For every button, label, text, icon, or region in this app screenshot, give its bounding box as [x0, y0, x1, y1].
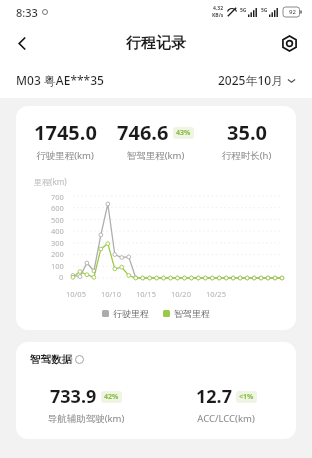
staticText: 智驾里程(km) [110, 149, 201, 162]
staticText: 700 [51, 192, 64, 202]
staticText: 600 [51, 203, 64, 213]
staticText: 42% [104, 392, 119, 402]
other: Info [75, 355, 84, 364]
staticText: 智驾数据 [30, 353, 72, 366]
staticText: 10/15 [136, 289, 156, 299]
button[interactable]: 行驶里程 [102, 308, 149, 319]
staticText: 746.6 [117, 119, 169, 146]
staticText: 行程时长(h) [201, 149, 292, 162]
staticText: ACC/LCC(km) [156, 412, 296, 425]
staticText: 35.0 [227, 119, 267, 146]
button[interactable]: 智驾里程 [163, 308, 210, 319]
staticText: 10/05 [66, 289, 86, 299]
staticText: KB/s [212, 12, 224, 19]
button[interactable]: M03 粤AE***35 [16, 72, 104, 88]
staticText: 100 [51, 261, 64, 271]
staticText: 4.32 [213, 5, 223, 12]
staticText: 43% [176, 128, 191, 138]
staticText: 8:33 [16, 5, 38, 20]
staticText: 92 [289, 8, 296, 16]
staticText: 10/25 [206, 289, 226, 299]
staticText: 里程(km) [34, 176, 67, 187]
staticText: 300 [51, 238, 64, 248]
staticText: 行程记录 [126, 34, 186, 53]
button[interactable]: 智驾数据 [30, 353, 84, 366]
staticText: 行驶里程(km) [20, 149, 110, 162]
button[interactable]: 2025年10月 [218, 72, 296, 88]
staticText: 12.7 [196, 384, 232, 409]
button[interactable]: 733.9 [16, 384, 156, 425]
staticText: 智驾里程 [174, 308, 210, 319]
staticText: 1745.0 [34, 119, 97, 146]
button[interactable]: 35.0 [201, 119, 292, 162]
button[interactable]: Settings [271, 25, 307, 61]
staticText: 200 [51, 249, 64, 259]
staticText: 10/20 [171, 289, 191, 299]
staticText: 5G [261, 7, 268, 14]
button[interactable]: Back [4, 25, 40, 61]
staticText: 导航辅助驾驶(km) [16, 412, 156, 425]
staticText: 400 [51, 226, 64, 236]
button[interactable]: 12.7 [156, 384, 296, 425]
staticText: <1% [239, 392, 254, 402]
staticText: 10/10 [101, 289, 121, 299]
staticText: 行驶里程 [113, 308, 149, 319]
staticText: 500 [51, 215, 64, 225]
staticText: 2025年10月 [218, 72, 284, 88]
button[interactable]: 746.6 [110, 119, 201, 162]
button[interactable]: 1745.0 [20, 119, 110, 162]
staticText: 733.9 [50, 384, 97, 409]
staticText: 0 [59, 272, 64, 282]
staticText: 5G [240, 7, 247, 14]
